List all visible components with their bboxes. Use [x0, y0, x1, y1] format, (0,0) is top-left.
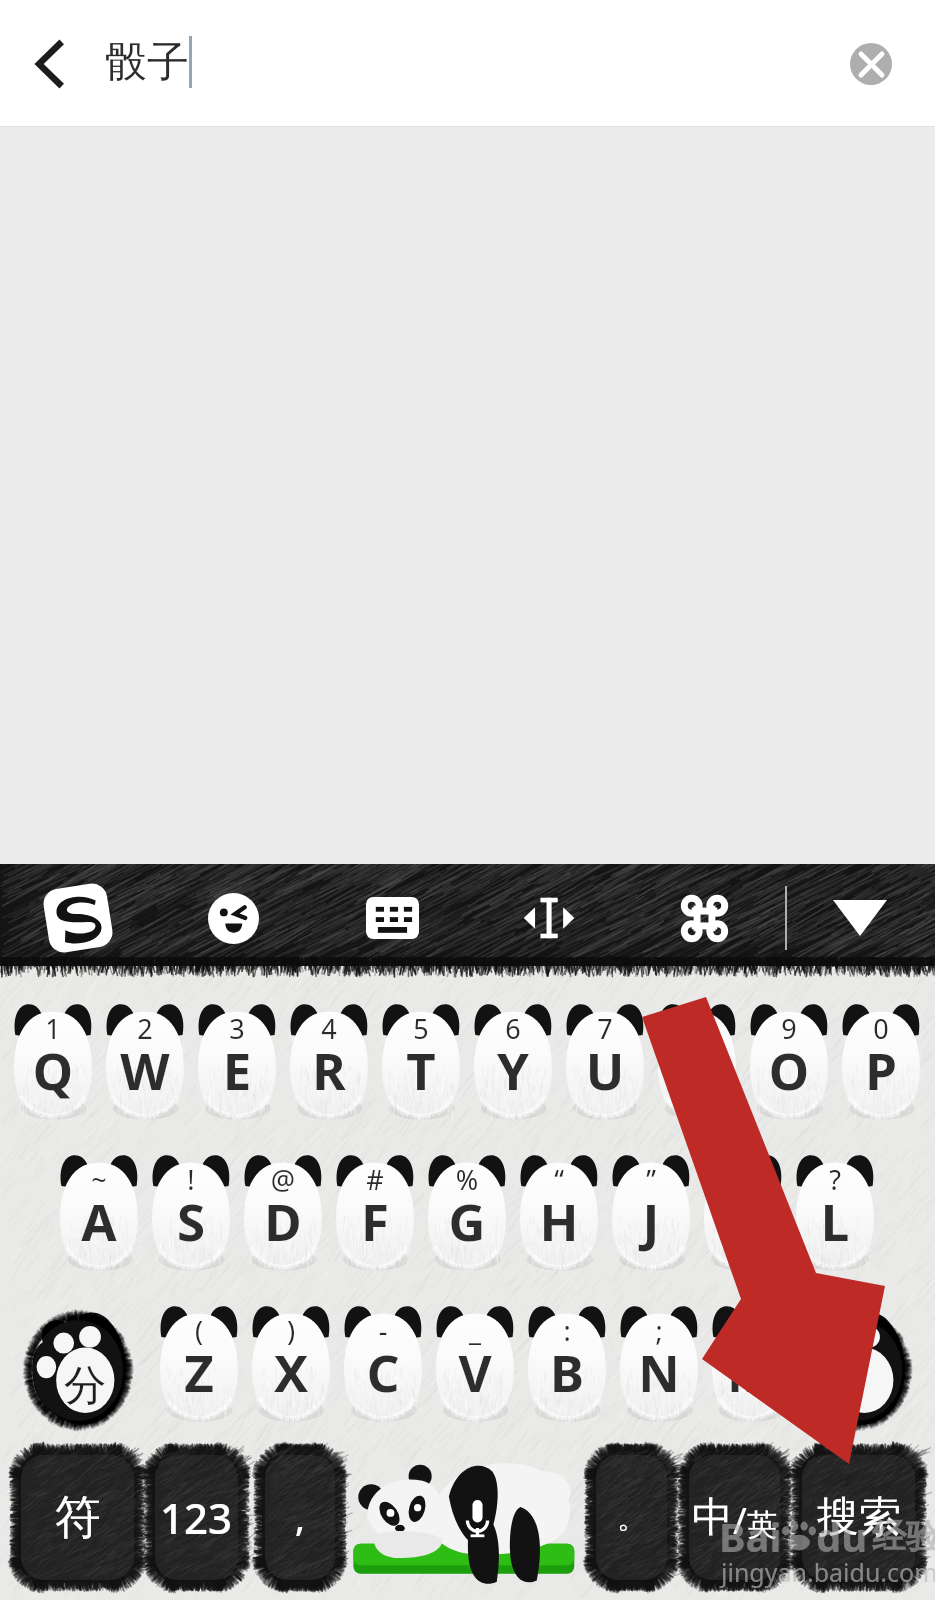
staticText: Q: [13, 1035, 93, 1104]
button[interactable]: 9: [749, 1003, 829, 1115]
staticText: ,: [295, 1493, 305, 1542]
staticText: D: [243, 1186, 323, 1255]
button[interactable]: /: [711, 1305, 791, 1417]
button[interactable]: @: [243, 1154, 323, 1266]
button[interactable]: ;: [619, 1305, 699, 1417]
button[interactable]: #: [335, 1154, 415, 1266]
button[interactable]: Sogou input: [24, 864, 132, 972]
button[interactable]: ~: [59, 1154, 139, 1266]
staticText: /: [711, 1312, 791, 1349]
staticText: 1: [13, 1010, 93, 1047]
staticText: 中: [692, 1492, 733, 1544]
staticText: T: [381, 1035, 461, 1104]
button[interactable]: _: [435, 1305, 515, 1417]
staticText: 123: [160, 1489, 233, 1546]
button[interactable]: Clear text: [808, 0, 933, 127]
button[interactable]: (: [159, 1305, 239, 1417]
staticText: P: [841, 1035, 921, 1104]
button[interactable]: Symbols: [18, 1452, 137, 1583]
staticText: 6: [473, 1010, 553, 1047]
staticText: J: [611, 1186, 691, 1255]
staticText: U: [565, 1035, 645, 1104]
staticText: (: [159, 1312, 239, 1349]
button[interactable]: Shortcuts: [650, 864, 758, 972]
button[interactable]: 2: [105, 1003, 185, 1115]
button[interactable]: ”: [611, 1154, 691, 1266]
staticText: H: [519, 1186, 599, 1255]
button[interactable]: 中: [686, 1452, 783, 1583]
button[interactable]: 7: [565, 1003, 645, 1115]
staticText: L: [795, 1186, 875, 1255]
staticText: M: [711, 1337, 791, 1406]
button[interactable]: 1: [13, 1003, 93, 1115]
staticText: 分: [29, 1360, 141, 1413]
staticText: Z: [159, 1337, 239, 1406]
staticText: Y: [473, 1035, 553, 1104]
button[interactable]: Hide keyboard: [806, 864, 914, 972]
staticText: V: [435, 1337, 515, 1406]
staticText: du: [816, 1509, 868, 1563]
button[interactable]: 3: [197, 1003, 277, 1115]
button[interactable]: Search: [799, 1452, 918, 1583]
staticText: X: [251, 1337, 331, 1406]
staticText: I: [657, 1035, 737, 1104]
staticText: ?: [795, 1161, 875, 1198]
staticText: !: [151, 1161, 231, 1198]
staticText: “: [519, 1161, 599, 1198]
button[interactable]: !: [151, 1154, 231, 1266]
staticText: B: [527, 1337, 607, 1406]
staticText: ~: [59, 1161, 139, 1198]
staticText: 4: [289, 1010, 369, 1047]
staticText: /: [733, 1494, 747, 1544]
staticText: 9: [749, 1010, 829, 1047]
button[interactable]: Symbols: [22, 1308, 134, 1428]
staticText: @: [243, 1161, 323, 1198]
staticText: jingyan.baidu.com: [721, 1555, 935, 1589]
staticText: N: [619, 1337, 699, 1406]
staticText: F: [335, 1186, 415, 1255]
button[interactable]: 4: [289, 1003, 369, 1115]
button[interactable]: 8: [657, 1003, 737, 1115]
button[interactable]: Move cursor: [494, 864, 602, 972]
staticText: ;: [619, 1312, 699, 1349]
staticText: A: [59, 1186, 139, 1255]
button[interactable]: ?: [795, 1154, 875, 1266]
button[interactable]: 5: [381, 1003, 461, 1115]
button[interactable]: %: [427, 1154, 507, 1266]
staticText: 。: [617, 1499, 647, 1537]
button[interactable]: Space: [350, 1452, 580, 1583]
staticText: Bai: [719, 1509, 782, 1563]
button[interactable]: -: [343, 1305, 423, 1417]
button[interactable]: “: [519, 1154, 599, 1266]
button[interactable]: Back: [0, 0, 100, 127]
button[interactable]: 0: [841, 1003, 921, 1115]
staticText: 符: [55, 1489, 101, 1547]
staticText: %: [427, 1161, 507, 1198]
staticText: _: [435, 1312, 515, 1349]
staticText: ”: [611, 1161, 691, 1198]
button[interactable]: Backspace: [801, 1308, 913, 1428]
staticText: S: [151, 1186, 231, 1255]
staticText: G: [427, 1186, 507, 1255]
staticText: 7: [565, 1010, 645, 1047]
staticText: K: [703, 1186, 783, 1255]
button[interactable]: &: [703, 1154, 783, 1266]
button[interactable]: Emoji: [179, 864, 287, 972]
button[interactable]: 6: [473, 1003, 553, 1115]
staticText: #: [335, 1161, 415, 1198]
staticText: 8: [657, 1010, 737, 1047]
staticText: W: [105, 1035, 185, 1104]
staticText: -: [343, 1312, 423, 1349]
button[interactable]: Keyboard layout: [338, 864, 446, 972]
button[interactable]: :: [527, 1305, 607, 1417]
staticText: 经验: [872, 1515, 935, 1558]
button[interactable]: Numbers: [152, 1452, 241, 1583]
staticText: C: [343, 1337, 423, 1406]
button[interactable]: ): [251, 1305, 331, 1417]
staticText: 0: [841, 1010, 921, 1047]
button[interactable]: Comma: [262, 1452, 338, 1583]
staticText: 英: [747, 1506, 777, 1544]
staticText: O: [749, 1035, 829, 1104]
staticText: ): [251, 1312, 331, 1349]
button[interactable]: Period: [593, 1452, 670, 1583]
